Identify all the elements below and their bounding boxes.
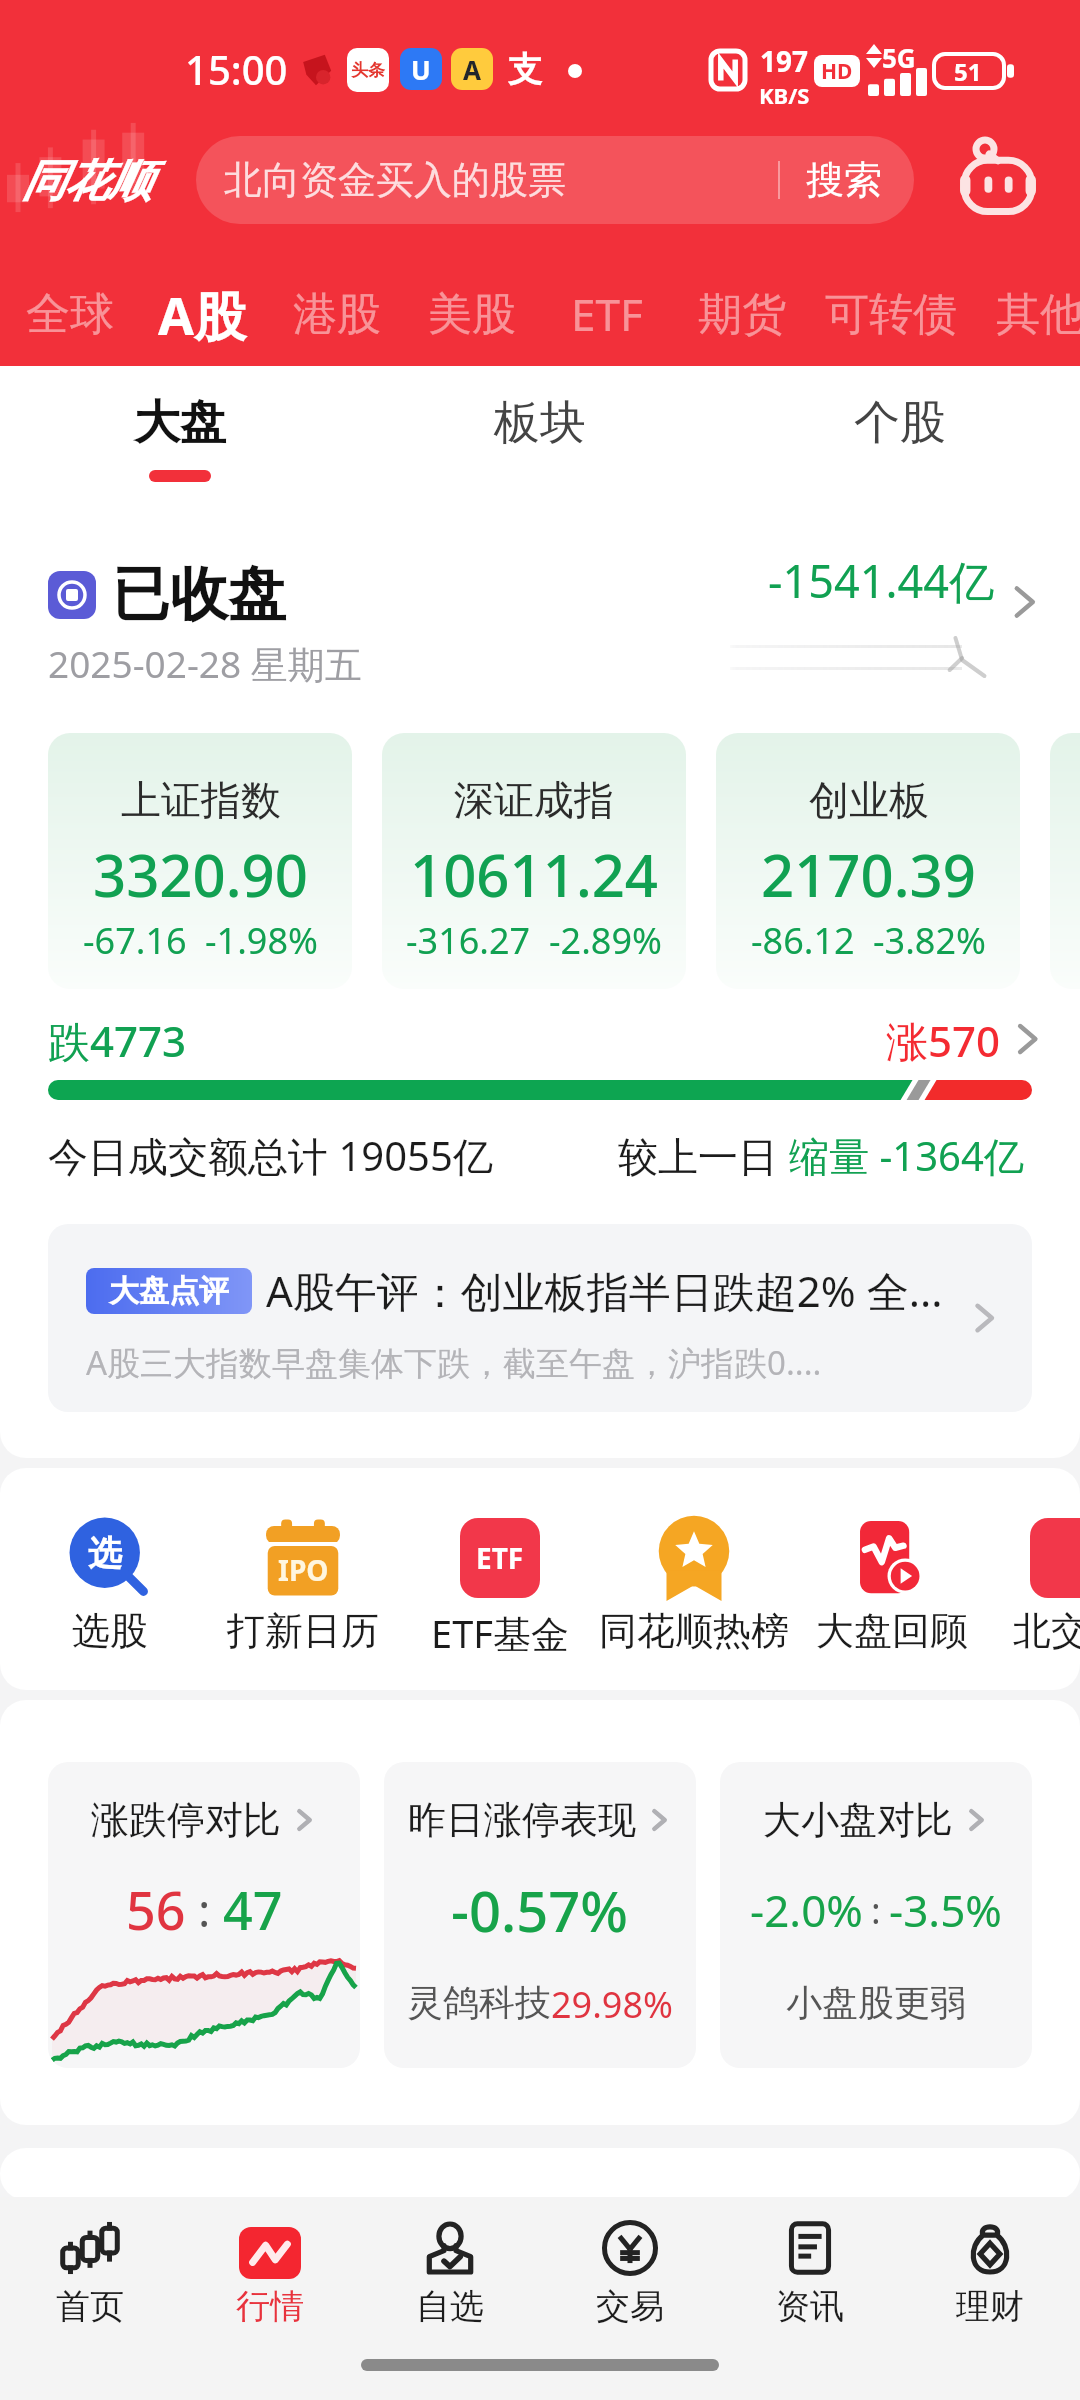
staticText: 大盘点评	[109, 1272, 229, 1310]
staticText: 港股	[293, 287, 381, 342]
button[interactable]: 期货	[682, 276, 802, 352]
staticText: -0.57%	[451, 1872, 629, 1948]
staticText: -2.0%	[750, 1880, 863, 1940]
staticText: 板块	[494, 394, 586, 452]
staticText: 选	[88, 1532, 122, 1575]
staticText: 大盘回顾	[816, 1607, 968, 1655]
button[interactable]: ETF	[403, 1514, 597, 1659]
staticText: 大小盘对比	[763, 1796, 953, 1844]
button[interactable]: 大小盘对比	[720, 1762, 1032, 2068]
button[interactable]: 港股	[277, 276, 397, 352]
button[interactable]: 资讯	[720, 2197, 900, 2347]
staticText: U	[411, 52, 431, 87]
button[interactable]: 大盘点评	[48, 1224, 1032, 1412]
button[interactable]: 涨跌停对比	[48, 1762, 360, 2068]
staticText: 197	[760, 42, 809, 80]
staticText: 首页	[56, 2285, 124, 2328]
staticText: :	[871, 1886, 881, 1935]
staticText: 选股	[72, 1607, 148, 1655]
staticText: 同花顺热榜	[599, 1607, 789, 1655]
staticText: 2025-02-28 星期五	[48, 638, 362, 689]
button[interactable]: 选	[13, 1514, 207, 1655]
staticText: A股三大指数早盘集体下跌，截至午盘，沪指跌0....	[86, 1340, 822, 1385]
staticText: 今日成交额总计 19055亿	[48, 1128, 493, 1183]
staticText: 其他	[996, 287, 1080, 342]
staticText: 涨跌停对比	[91, 1796, 281, 1844]
button[interactable]: 板块	[360, 366, 720, 496]
staticText: 交易	[596, 2285, 664, 2328]
button[interactable]: 上证指数	[48, 733, 352, 989]
button[interactable]: 北向资金买入的股票	[196, 136, 914, 224]
button[interactable]: ETF	[547, 276, 667, 352]
staticText: 美股	[428, 287, 516, 342]
staticText: -2.89%	[549, 916, 662, 965]
staticText: HD	[821, 57, 853, 86]
staticText: A股	[158, 279, 246, 350]
button[interactable]: 大盘回顾	[795, 1514, 989, 1655]
staticText: -3.82%	[873, 916, 986, 965]
staticText: -67.16	[83, 916, 187, 965]
button[interactable]: 昨日涨停表现	[384, 1762, 696, 2068]
staticText: 行情	[236, 2285, 304, 2328]
staticText: -86.12	[751, 916, 855, 965]
staticText: 支	[508, 48, 542, 91]
button[interactable]: 行情	[180, 2197, 360, 2347]
staticText: 深证成指	[454, 775, 614, 825]
staticText: A股午评：创业板指半日跌超2% 全...	[266, 1262, 943, 1319]
button[interactable]: IPO	[206, 1514, 400, 1655]
staticText: 资讯	[776, 2285, 844, 2328]
button[interactable]: 其他	[980, 276, 1080, 352]
button[interactable]: 自选	[360, 2197, 540, 2347]
staticText: ETF	[571, 284, 643, 344]
staticText: ETF基金	[431, 1607, 569, 1659]
staticText: 昨日涨停表现	[408, 1796, 636, 1844]
staticText: -1541.44亿	[768, 550, 994, 611]
button[interactable]: 个股	[720, 366, 1080, 496]
staticText: KB/S	[759, 80, 810, 110]
button[interactable]: 全球	[10, 276, 130, 352]
staticText: 缩量 -1364亿	[789, 1128, 1024, 1183]
staticText: -1.98%	[205, 916, 318, 965]
staticText: 北交所	[1013, 1607, 1080, 1655]
staticText: :	[198, 1878, 211, 1941]
staticText: 51	[954, 55, 982, 88]
staticText: 创业板	[809, 775, 929, 825]
button[interactable]: 理财	[900, 2197, 1080, 2347]
button[interactable]: 首页	[0, 2197, 180, 2347]
button[interactable]: A股	[137, 276, 267, 352]
staticText: 个股	[854, 394, 946, 452]
staticText: 可转债	[825, 287, 957, 342]
staticText: -3.5%	[889, 1880, 1002, 1940]
button[interactable]: 同花顺热榜	[597, 1514, 791, 1655]
button[interactable]: 大盘	[0, 366, 360, 496]
staticText: 上证指数	[121, 775, 281, 825]
staticText: 搜索	[806, 156, 882, 204]
staticText: A	[463, 52, 481, 87]
staticText: 56	[126, 1874, 186, 1945]
staticText: 全球	[26, 287, 114, 342]
staticText: 47	[223, 1874, 283, 1945]
staticText: 29.98%	[551, 1980, 673, 2029]
button[interactable]: 创业板	[716, 733, 1020, 989]
button[interactable]: 北交所	[973, 1514, 1080, 1655]
button[interactable]: 交易	[540, 2197, 720, 2347]
staticText: 15:00	[185, 42, 288, 96]
staticText: -316.27	[406, 916, 531, 965]
staticText: 涨570	[886, 1012, 1001, 1069]
staticText: 头条	[351, 60, 385, 81]
staticText: 小盘股更弱	[786, 1980, 966, 2025]
staticText: 2170.39	[761, 835, 976, 914]
staticText: IPO	[278, 1551, 329, 1589]
staticText: 5G	[882, 40, 916, 75]
staticText: 灵鸽科技	[407, 1980, 551, 2025]
button[interactable]: 深证成指	[382, 733, 686, 989]
staticText: 同花顺	[22, 154, 151, 209]
staticText: ETF	[476, 1539, 524, 1577]
button[interactable]: AI 助手	[946, 136, 1050, 226]
button[interactable]: 可转债	[803, 276, 978, 352]
button[interactable]: 美股	[412, 276, 532, 352]
staticText: 已收盘	[112, 558, 286, 631]
staticText: 北向资金买入的股票	[224, 156, 566, 204]
staticText: 较上一日	[618, 1128, 789, 1183]
staticText: 理财	[956, 2285, 1024, 2328]
